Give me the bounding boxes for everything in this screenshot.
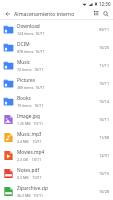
staticText: 878 items 10/11 <box>17 49 45 54</box>
staticText: 10/28 <box>99 189 110 194</box>
staticText: 10/14 <box>99 99 110 104</box>
staticText: 10/11 <box>99 117 110 122</box>
staticText: 2.4 MB 10/11 <box>17 139 42 144</box>
staticText: 09/11 <box>99 27 110 32</box>
staticText: Notes.pdf <box>17 167 40 174</box>
button[interactable]: Pictures <box>0 74 113 92</box>
staticText: 0.2 MB 10/11 <box>17 175 42 180</box>
staticText: DCIM <box>17 41 30 48</box>
staticText: 124 items 10/11 <box>17 31 45 36</box>
button[interactable]: Notes.pdf <box>0 164 113 182</box>
staticText: 10/15 <box>99 171 110 176</box>
staticText: 10/11 <box>99 81 110 86</box>
staticText: 19 items 10/11 <box>17 103 44 108</box>
staticText: 36.2 MB 10/11 <box>17 193 44 198</box>
button[interactable]: DCIM <box>0 38 113 56</box>
button[interactable]: Books <box>0 92 113 110</box>
staticText: 2.3 GB 10/11 <box>17 157 42 162</box>
staticText: 1.25 MB 10/11 <box>17 121 44 126</box>
button[interactable]: Grid view <box>92 9 101 18</box>
staticText: Almacenamiento interno <box>14 10 92 17</box>
staticText: Ziparchive.zip <box>17 185 48 192</box>
staticText: 72 items 10/11 <box>17 67 44 72</box>
staticText: Music.mp3 <box>17 131 42 138</box>
staticText: 12/01 <box>99 153 110 158</box>
staticText: Movies.mp4 <box>17 149 45 156</box>
button[interactable]: Download <box>0 20 113 38</box>
staticText: Pictures <box>17 77 36 84</box>
staticText: Books <box>17 95 31 102</box>
button[interactable]: Image.jpg <box>0 110 113 128</box>
button[interactable]: Back <box>3 9 12 18</box>
staticText: 10/20 <box>99 45 110 50</box>
staticText: Download <box>17 23 40 30</box>
staticText: Image.jpg <box>17 113 40 120</box>
staticText: 11/08 <box>99 135 110 140</box>
staticText: 12:30 <box>99 1 111 7</box>
staticText: 11/11 <box>99 63 110 68</box>
staticText: 389 items 10/11 <box>17 85 45 90</box>
button[interactable]: Ziparchive.zip <box>0 182 113 200</box>
button[interactable]: Movies.mp4 <box>0 146 113 164</box>
button[interactable]: Music <box>0 56 113 74</box>
button[interactable]: Search <box>101 9 110 18</box>
staticText: Music <box>17 59 31 66</box>
button[interactable]: Music.mp3 <box>0 128 113 146</box>
